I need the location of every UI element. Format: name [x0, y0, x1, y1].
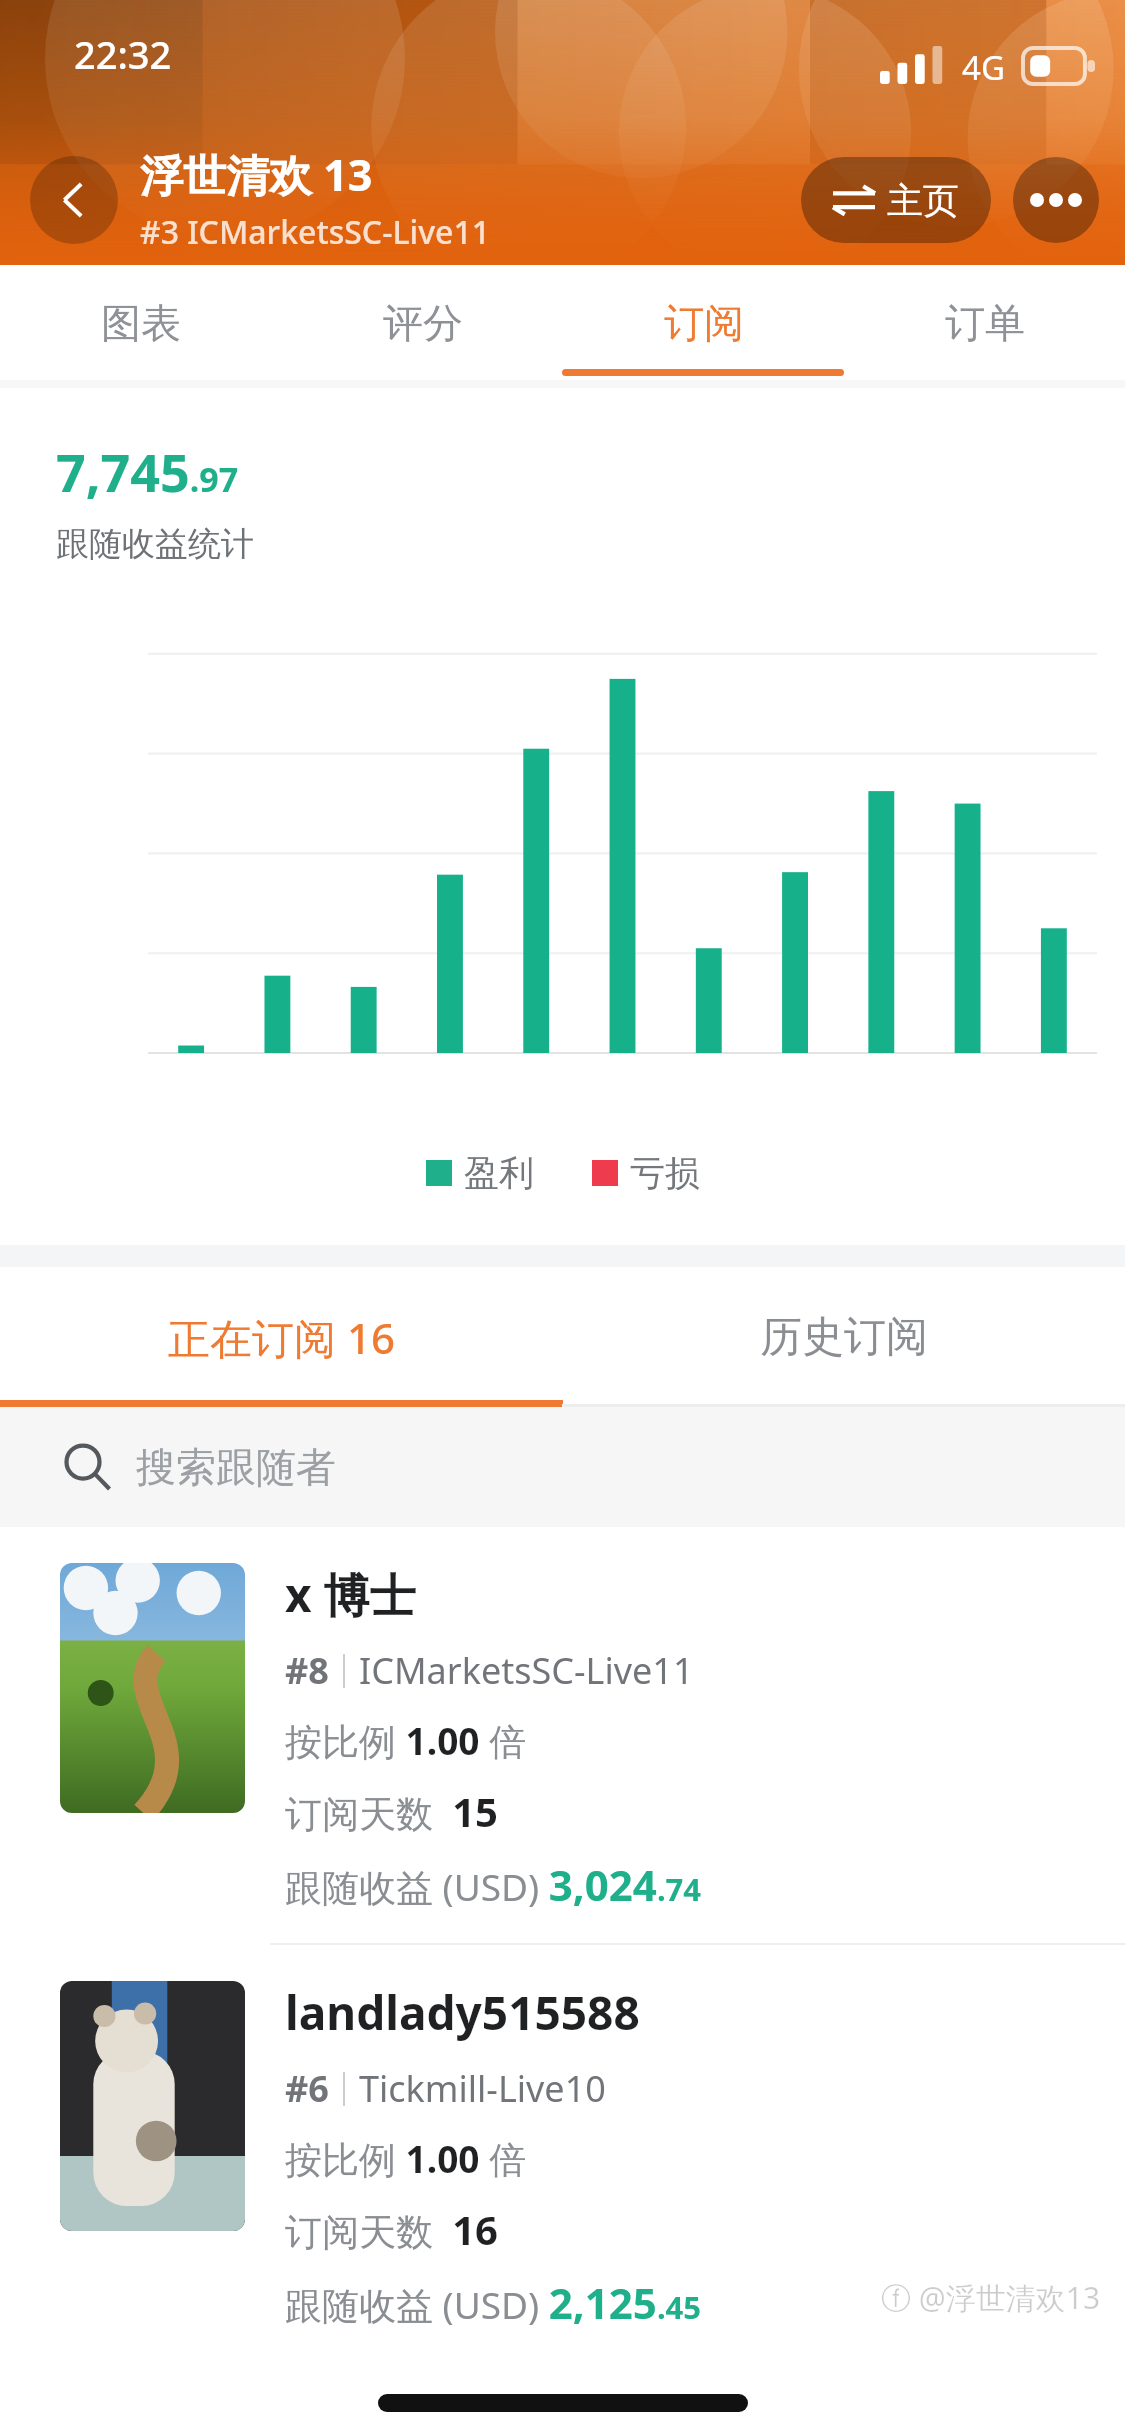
- staticText: 跟随收益 (USD) 3,024.74: [285, 1856, 702, 1913]
- staticText: x 博士: [285, 1563, 416, 1626]
- button[interactable]: More options: [1013, 157, 1099, 243]
- staticText: 订单: [945, 298, 1025, 348]
- staticText: 图表: [101, 298, 181, 348]
- staticText: 亏损: [630, 1151, 700, 1195]
- staticText: 22:32: [74, 28, 172, 80]
- button[interactable]: 正在订阅 16: [0, 1267, 562, 1407]
- staticText: 4G: [962, 45, 1005, 90]
- staticText: 订阅天数 16: [285, 2202, 498, 2256]
- staticText: 7,745.97: [56, 436, 239, 507]
- staticText: 跟随收益统计: [56, 523, 254, 565]
- staticText: 历史订阅: [760, 1311, 928, 1364]
- staticText: 跟随收益 (USD) 2,125.45: [285, 2274, 702, 2331]
- staticText: 搜索跟随者: [136, 1442, 336, 1492]
- button[interactable]: 图表: [0, 265, 282, 380]
- button[interactable]: 主页: [801, 157, 991, 243]
- button[interactable]: Back: [30, 156, 118, 244]
- button[interactable]: 评分: [282, 265, 563, 380]
- staticText: 按比例 1.00 倍: [285, 1715, 527, 1766]
- staticText: 评分: [383, 298, 463, 348]
- staticText: 正在订阅 16: [168, 1309, 395, 1366]
- staticText: #8: [285, 1646, 329, 1695]
- staticText: 按比例 1.00 倍: [285, 2133, 527, 2184]
- button[interactable]: 订单: [844, 265, 1125, 380]
- button[interactable]: 历史订阅: [562, 1267, 1125, 1407]
- staticText: Tickmill-Live10: [359, 2064, 606, 2113]
- staticText: #6: [285, 2064, 329, 2113]
- staticText: ICMarketsSC-Live11: [359, 1646, 694, 1695]
- staticText: #3 ICMarketsSC-Live11: [140, 210, 490, 254]
- staticText: 订阅: [664, 298, 744, 348]
- staticText: ⓕ @浮世清欢13: [881, 2277, 1101, 2318]
- button[interactable]: 搜索跟随者: [0, 1407, 1125, 1527]
- button[interactable]: 订阅: [563, 265, 844, 380]
- staticText: 浮世清欢 13: [140, 145, 373, 204]
- staticText: 盈利: [464, 1151, 534, 1195]
- button[interactable]: landlady515588: [0, 1945, 1125, 2361]
- staticText: 主页: [887, 178, 959, 223]
- button[interactable]: x 博士: [0, 1527, 1125, 1943]
- staticText: landlady515588: [285, 1981, 640, 2044]
- staticText: 订阅天数 15: [285, 1784, 498, 1838]
